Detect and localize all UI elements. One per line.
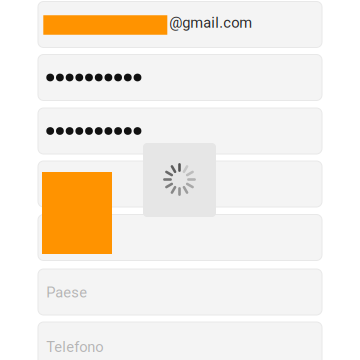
- button[interactable]: [38, 214, 322, 260]
- button[interactable]: [38, 54, 322, 100]
- button[interactable]: [38, 161, 322, 207]
- staticText: @gmail.com: [169, 14, 252, 31]
- button[interactable]: Paese: [38, 269, 322, 315]
- button[interactable]: @gmail.com: [38, 1, 322, 47]
- button[interactable]: [38, 108, 322, 154]
- staticText: Paese: [46, 284, 87, 301]
- button[interactable]: Telefono: [38, 322, 322, 360]
- staticText: Telefono: [46, 338, 103, 355]
